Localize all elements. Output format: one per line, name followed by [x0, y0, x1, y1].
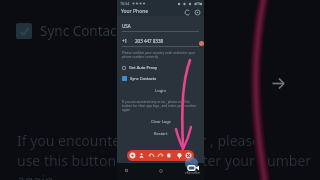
staticText: Please confirm your country code and ent… — [122, 51, 199, 59]
button[interactable]: Tool 5 — [176, 152, 183, 159]
staticText: USA — [122, 23, 131, 29]
button[interactable]: Home — [157, 167, 164, 174]
button[interactable]: Tool 2 — [148, 152, 155, 159]
button[interactable]: Back — [191, 167, 198, 174]
staticText: 78 — [196, 1, 201, 6]
button[interactable]: Restart — [122, 130, 199, 136]
staticText: Sync Contacts — [130, 76, 157, 81]
button[interactable]: Clear Logs — [122, 118, 199, 124]
staticText: Login — [155, 88, 166, 94]
button[interactable]: Recents — [123, 167, 130, 174]
staticText: xRecorder — [185, 171, 201, 175]
button[interactable]: Tool 0 — [129, 152, 136, 159]
button[interactable]: Tool 3 — [157, 152, 164, 159]
button[interactable]: Tool 1 — [138, 152, 145, 159]
staticText: Clear Logs — [151, 119, 171, 124]
staticText: If you encountered any error , please — [17, 131, 261, 150]
button[interactable]: Tool 6 — [185, 152, 192, 159]
staticText: +1 — [122, 38, 128, 44]
staticText: Your Phone — [121, 8, 149, 15]
staticText: 203 447 8338 — [135, 38, 164, 44]
button[interactable]: Settings — [194, 9, 200, 15]
staticText: again — [17, 171, 54, 180]
button[interactable]: Get Auto Proxy — [122, 65, 158, 70]
button[interactable]: Tool 4 — [166, 152, 173, 159]
button[interactable]: Recorder toolbar — [127, 150, 194, 161]
button[interactable]: Sync Contacts — [122, 76, 157, 81]
staticText: Sync Contacts — [40, 22, 128, 40]
staticText: Get Auto Proxy — [129, 65, 158, 70]
staticText: use this button for , and enter your num… — [17, 151, 312, 170]
button[interactable]: Login — [122, 88, 199, 94]
button[interactable]: Next — [272, 77, 285, 90]
staticText: If you encountered any error , please us… — [122, 100, 199, 112]
staticText: 10:34 — [120, 1, 130, 6]
staticText: Restart — [154, 131, 168, 136]
button[interactable]: Refresh — [184, 9, 190, 15]
